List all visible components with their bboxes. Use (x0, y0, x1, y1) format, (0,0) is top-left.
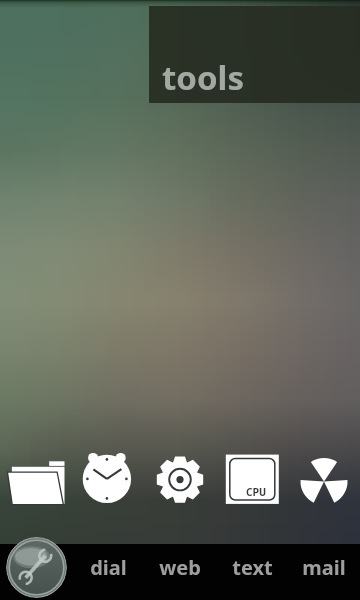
button[interactable]: web (144, 544, 216, 600)
button[interactable]: text (216, 544, 288, 600)
button[interactable]: tools (149, 6, 360, 103)
button[interactable]: Files (0, 450, 72, 512)
button[interactable]: Tools (6, 537, 67, 598)
button[interactable]: CPU (216, 450, 288, 512)
button[interactable]: dial (72, 544, 144, 600)
staticText: web (159, 554, 201, 581)
staticText: text (232, 554, 273, 581)
button[interactable]: Alarm (72, 450, 144, 512)
staticText: tools (162, 55, 244, 100)
button[interactable]: Settings (144, 450, 216, 512)
button[interactable]: Radiation (288, 450, 360, 512)
staticText: dial (90, 554, 127, 581)
staticText: mail (302, 554, 346, 581)
staticText: CPU (246, 484, 266, 499)
button[interactable]: mail (288, 544, 360, 600)
